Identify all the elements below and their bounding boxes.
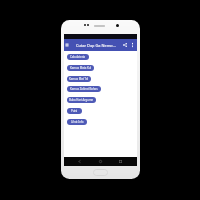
staticText: Kamus Mat Tel	[69, 77, 89, 81]
staticText: Buka Hari Argume	[69, 98, 94, 102]
staticText: Puisi	[71, 109, 78, 113]
button[interactable]: Cabulateria	[67, 54, 89, 60]
button[interactable]: Puisi	[67, 108, 82, 114]
staticText: Cabulateria	[70, 55, 86, 59]
button[interactable]: Back	[75, 157, 84, 166]
button[interactable]: More options	[129, 41, 135, 48]
button[interactable]: Lihat Info	[67, 119, 87, 125]
button[interactable]: Home button	[93, 169, 108, 176]
button[interactable]: Open navigation menu	[64, 41, 70, 48]
button[interactable]: Kamus Mat Tel	[67, 76, 91, 82]
staticText: Cutar Dap Ga Nemo...	[76, 43, 120, 48]
button[interactable]: Home	[96, 157, 105, 166]
button[interactable]: Recent apps	[116, 157, 125, 166]
staticText: Kamus Mata Kul	[70, 66, 92, 70]
button[interactable]: Buka Hari Argume	[67, 97, 96, 103]
button[interactable]: Share	[121, 41, 128, 48]
staticText: Kamus Zakirat Bahas	[70, 87, 98, 91]
button[interactable]: Kamus Zakirat Bahas	[67, 86, 101, 92]
staticText: Lihat Info	[71, 120, 84, 124]
button[interactable]: Kamus Mata Kul	[67, 65, 94, 71]
